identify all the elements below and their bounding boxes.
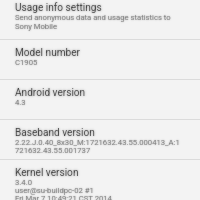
- staticText: Android version: [15, 87, 86, 99]
- staticText: Usage info settings: [15, 2, 102, 14]
- staticText: C1905: [15, 58, 38, 67]
- staticText: Baseband version: [15, 127, 95, 139]
- staticText: 721632.43.55.001737: [15, 146, 91, 155]
- button[interactable]: Kernel version: [0, 160, 200, 200]
- staticText: Model number: [15, 47, 81, 59]
- staticText: Fri Mar 7 10:49:21 CST 2014: [15, 194, 112, 200]
- staticText: 3.4.0: [15, 178, 33, 187]
- staticText: user@su-buildpc-02 #1: [15, 186, 94, 195]
- staticText: 2.22.J.0.40_8x30_M:1721632.43.55.000413_…: [15, 138, 180, 147]
- staticText: Kernel version: [15, 167, 79, 179]
- staticText: 4.3: [15, 98, 26, 107]
- button[interactable]: Android version: [0, 80, 200, 119]
- staticText: Send anonymous data and usage statistics…: [15, 13, 171, 22]
- button[interactable]: Model number: [0, 40, 200, 79]
- button[interactable]: Baseband version: [0, 120, 200, 159]
- button[interactable]: Usage info settings: [0, 0, 200, 39]
- staticText: Sony Mobile: [15, 22, 57, 31]
